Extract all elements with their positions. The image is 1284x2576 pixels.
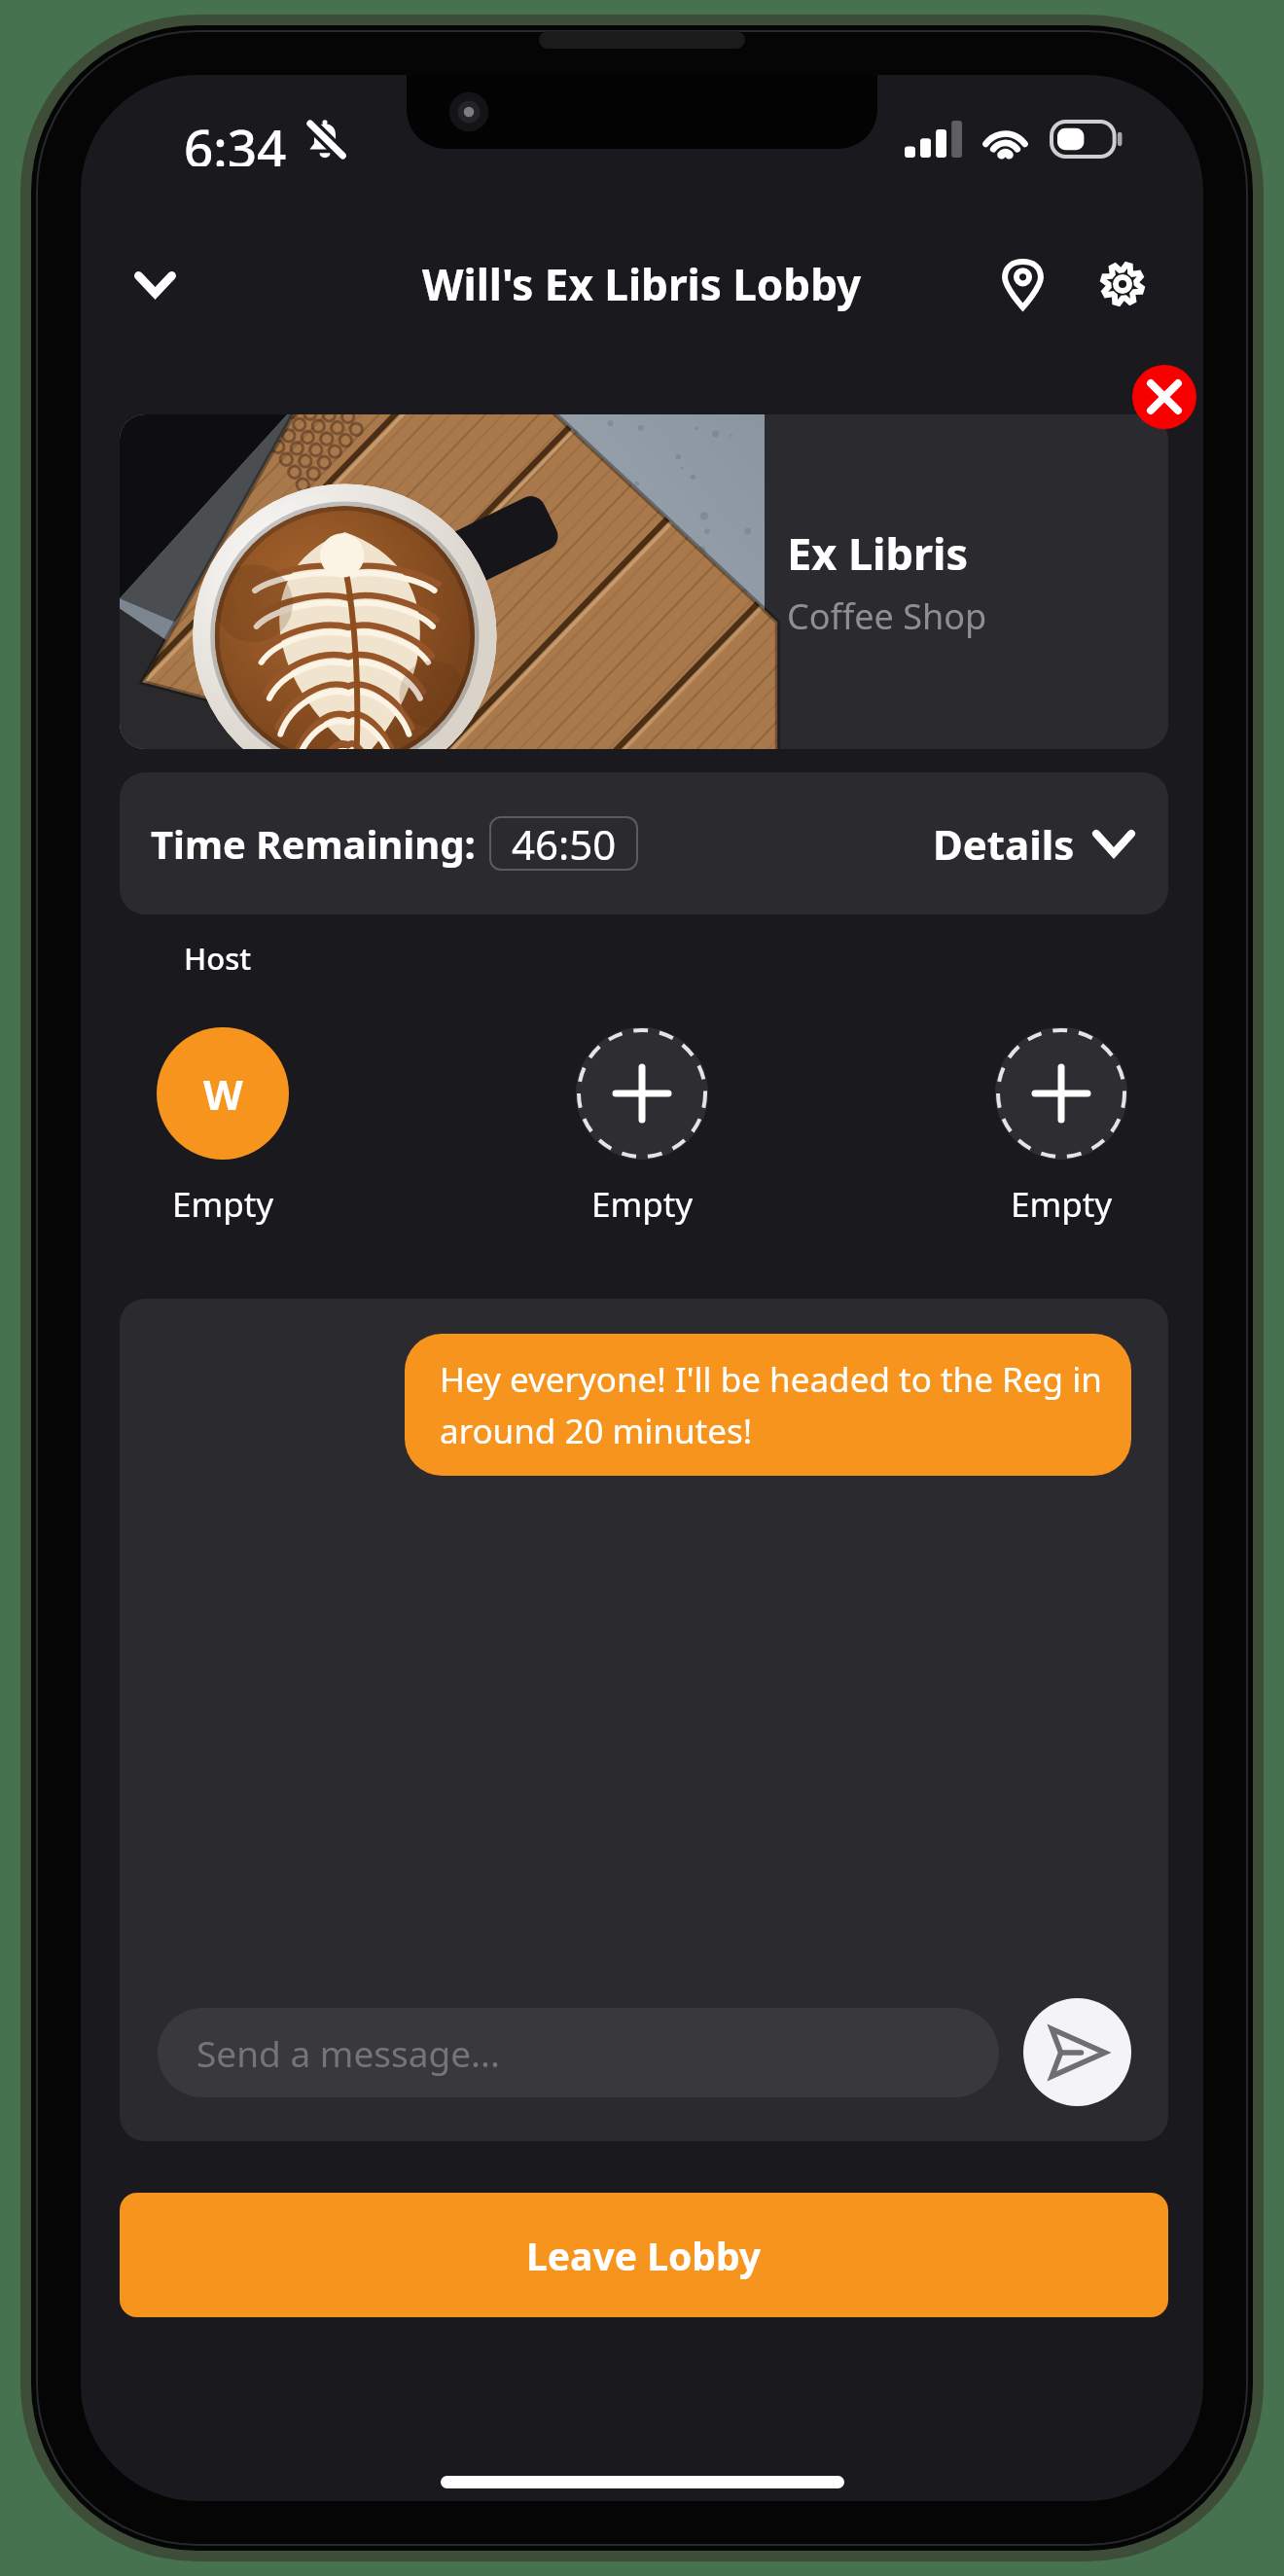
staticText: Host <box>184 938 252 979</box>
button[interactable]: Send <box>1023 1998 1131 2106</box>
button[interactable]: Ex Libris <box>120 414 1168 749</box>
staticText: 6:34 <box>184 112 287 166</box>
button[interactable]: Close <box>1132 365 1196 429</box>
staticText: Leave Lobby <box>526 2230 762 2281</box>
button[interactable]: Time Remaining: <box>120 772 1168 914</box>
staticText: Coffee Shop <box>787 592 987 640</box>
staticText: Empty <box>1011 1181 1113 1228</box>
staticText: Empty <box>172 1181 274 1228</box>
staticText: Time Remaining: <box>151 817 476 870</box>
staticText: Ex Libris <box>787 523 969 583</box>
staticText: 46:50 <box>512 816 617 871</box>
button[interactable]: Collapse <box>118 247 192 321</box>
button[interactable]: W <box>81 1027 365 1228</box>
staticText: Send a message... <box>196 2028 500 2077</box>
button[interactable]: Empty <box>919 1027 1203 1228</box>
button[interactable]: Send a message... <box>158 2008 999 2097</box>
staticText: Empty <box>591 1181 694 1228</box>
button[interactable]: Leave Lobby <box>120 2193 1168 2317</box>
staticText: Details <box>933 816 1075 872</box>
staticText: Hey everyone! I'll be headed to the Reg … <box>440 1356 1102 1453</box>
button[interactable]: Location <box>982 247 1062 321</box>
button[interactable]: Settings <box>1083 247 1162 321</box>
staticText: W <box>203 1066 243 1122</box>
button[interactable]: Empty <box>500 1027 784 1228</box>
staticText: Will's Ex Libris Lobby <box>422 255 862 313</box>
